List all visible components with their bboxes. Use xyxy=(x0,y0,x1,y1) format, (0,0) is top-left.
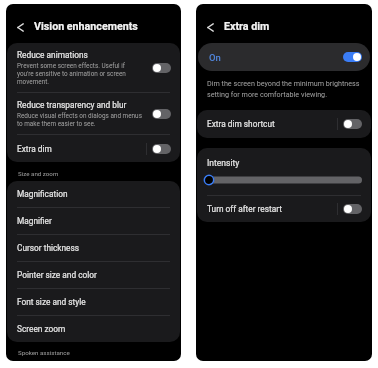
staticText: On xyxy=(209,52,221,63)
button[interactable]: Turn off after restart xyxy=(343,204,362,214)
staticText: Reduce visual effects on dialogs and men… xyxy=(17,112,142,128)
staticText: Extra dim xyxy=(224,20,270,33)
button[interactable]: On xyxy=(198,43,370,71)
button[interactable]: Reduce transparency and blur xyxy=(7,93,180,134)
button[interactable]: Magnifier xyxy=(7,208,180,234)
staticText: Extra dim shortcut xyxy=(207,119,275,129)
button[interactable]: Screen zoom xyxy=(7,316,180,342)
button[interactable]: Reduce transparency and blur xyxy=(152,109,171,119)
staticText: Turn off after restart xyxy=(207,204,282,214)
staticText: Pointer size and color xyxy=(17,270,97,280)
button[interactable]: Reduce animations xyxy=(152,63,171,73)
staticText: Vision enhancements xyxy=(34,20,138,33)
button[interactable]: Magnification xyxy=(7,181,180,207)
staticText: Cursor thickness xyxy=(17,243,80,253)
button[interactable]: Extra dim xyxy=(152,144,171,154)
button[interactable]: Extra dim shortcut xyxy=(343,119,362,129)
button[interactable]: Cursor thickness xyxy=(7,235,180,261)
button[interactable]: Turn off after restart xyxy=(197,196,371,222)
button[interactable]: Back xyxy=(12,19,29,35)
staticText: Reduce animations xyxy=(17,50,88,60)
button[interactable]: Pointer size and color xyxy=(7,262,180,288)
staticText: Spoken assistance xyxy=(18,349,70,356)
staticText: Magnifier xyxy=(17,216,52,226)
button[interactable]: Reduce animations xyxy=(7,43,180,92)
staticText: Magnification xyxy=(17,189,68,199)
button[interactable]: Back xyxy=(202,19,219,35)
staticText: Extra dim xyxy=(17,144,52,154)
button[interactable]: Font size and style xyxy=(7,289,180,315)
button[interactable]: Extra dim xyxy=(7,135,180,162)
staticText: Dim the screen beyond the minimum bright… xyxy=(207,79,360,99)
button[interactable]: Extra dim shortcut xyxy=(197,110,371,138)
staticText: Prevent some screen effects. Useful if y… xyxy=(17,62,126,86)
staticText: Size and zoom xyxy=(18,170,59,177)
button[interactable]: Extra dim on xyxy=(343,52,362,62)
staticText: Intensity xyxy=(207,158,240,168)
staticText: Font size and style xyxy=(17,297,86,307)
staticText: Screen zoom xyxy=(17,324,66,334)
staticText: Reduce transparency and blur xyxy=(17,100,127,110)
